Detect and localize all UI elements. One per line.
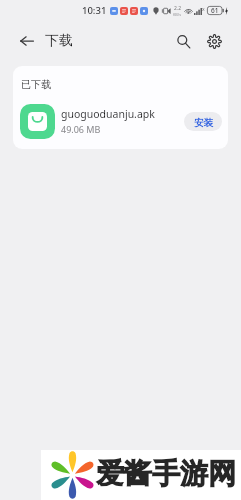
staticText: KB/s	[173, 12, 182, 16]
staticText: x	[202, 6, 205, 13]
staticText: 10:31	[82, 4, 107, 17]
staticText: 已下载	[21, 78, 51, 91]
staticText: 安装	[194, 117, 213, 129]
button[interactable]: Back	[13, 27, 41, 55]
button[interactable]: Settings	[200, 27, 228, 55]
button[interactable]: guoguoduanju.apk	[20, 101, 222, 141]
staticText: 61	[211, 6, 219, 15]
staticText: guoguoduanju.apk	[61, 107, 155, 121]
staticText: 爱酱手游网	[96, 456, 236, 491]
staticText: 49.06 MB	[61, 123, 101, 135]
staticText: 下载	[45, 32, 73, 49]
staticText: 2.2	[174, 5, 182, 12]
button[interactable]: Search	[169, 27, 197, 55]
button[interactable]: 安装	[184, 112, 222, 131]
